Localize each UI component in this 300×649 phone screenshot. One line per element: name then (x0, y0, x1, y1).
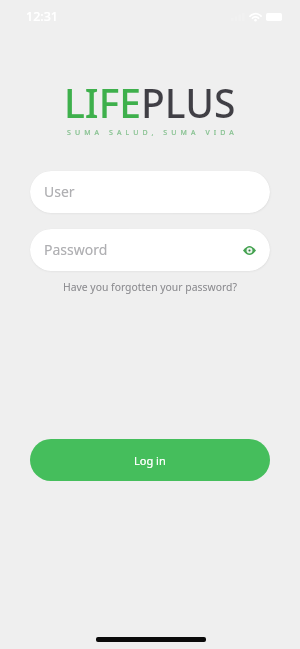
button[interactable]: Show password (238, 239, 260, 261)
button[interactable]: Log in (30, 439, 270, 481)
staticText: LIFEPLUS (64, 76, 236, 129)
staticText: Log in (134, 453, 166, 468)
staticText: 12:31 (26, 8, 59, 25)
button[interactable]: Have you forgotten your password? (59, 279, 241, 295)
staticText: Password (44, 240, 108, 259)
button[interactable]: User (30, 171, 270, 213)
button[interactable]: Password (30, 229, 270, 271)
staticText: SUMA SALUD, SUMA VIDA (67, 128, 238, 138)
staticText: User (44, 182, 75, 201)
